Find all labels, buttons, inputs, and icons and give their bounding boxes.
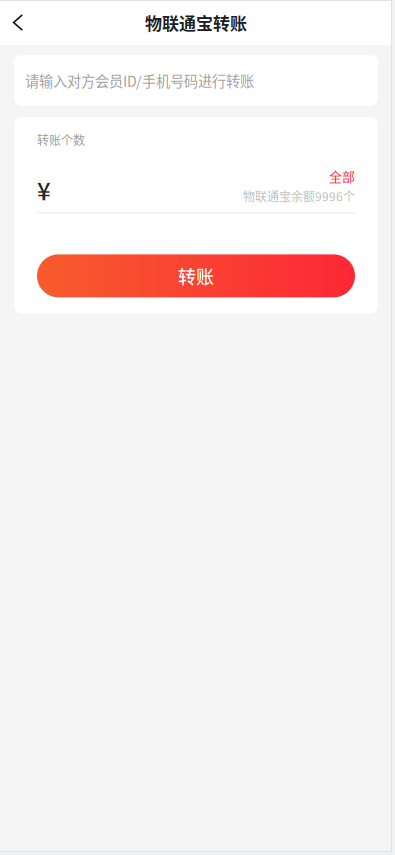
button[interactable]: 全部	[329, 166, 355, 185]
staticText: 物联通宝转账	[145, 10, 247, 35]
button[interactable]: 请输入对方会员ID/手机号码进行转账	[14, 55, 378, 106]
button[interactable]: 转账	[37, 254, 355, 297]
staticText: 全部	[329, 166, 355, 185]
button[interactable]: Back	[0, 0, 35, 45]
staticText: 请输入对方会员ID/手机号码进行转账	[25, 70, 254, 91]
staticText: 转账个数	[37, 131, 85, 148]
staticText: 转账	[178, 263, 214, 289]
staticText: ¥	[37, 172, 51, 207]
staticText: 物联通宝余额9996个	[243, 187, 355, 205]
